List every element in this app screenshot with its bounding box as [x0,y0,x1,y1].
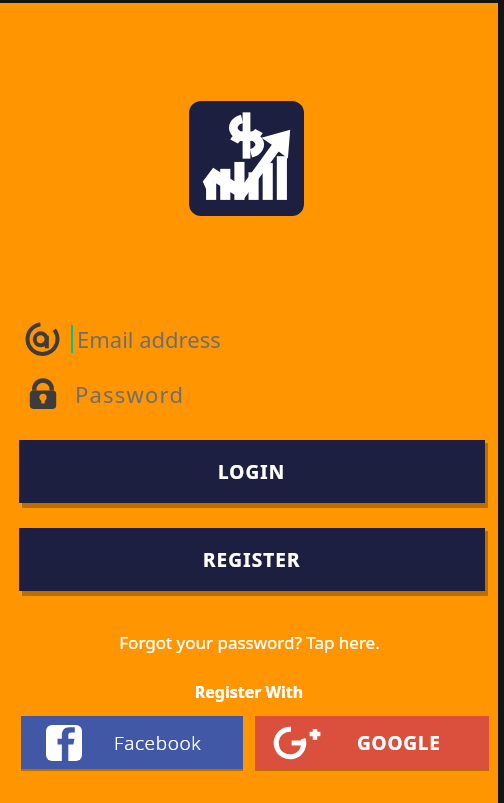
staticText: Register With [0,681,498,703]
staticText: LOGIN [218,459,286,485]
button[interactable]: Forgot your password? Tap here. [0,631,498,654]
staticText: Forgot your password? Tap here. [119,631,380,654]
button[interactable]: GOOGLE [255,716,489,769]
staticText: Password [75,379,185,409]
staticText: GOOGLE [357,730,441,756]
staticText: Facebook [114,730,202,756]
button[interactable]: Facebook [21,716,243,769]
staticText: REGISTER [203,547,301,573]
button[interactable]: Email address [0,314,498,364]
button[interactable]: LOGIN [19,440,485,503]
button[interactable]: Password [0,370,498,418]
button[interactable]: REGISTER [19,528,485,591]
staticText: Email address [77,324,221,354]
